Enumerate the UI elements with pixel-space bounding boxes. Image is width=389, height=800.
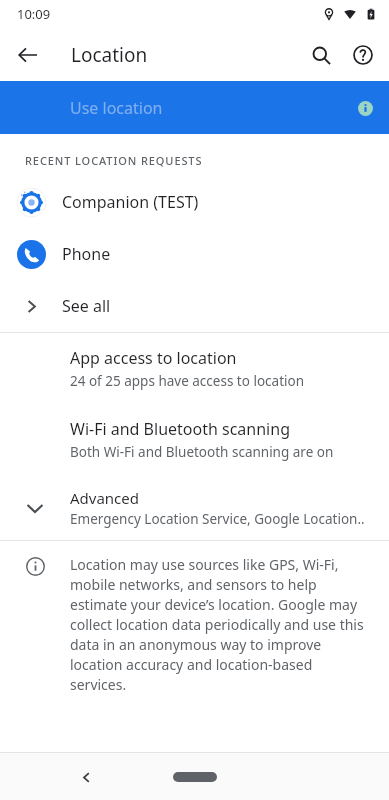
staticText: Location [71, 42, 148, 68]
button[interactable]: App access to location [0, 333, 389, 404]
button[interactable]: Companion (TEST) [0, 176, 389, 228]
button[interactable]: Home [173, 772, 217, 782]
button[interactable]: Advanced [0, 475, 389, 540]
staticText: 10:09 [17, 5, 51, 23]
button[interactable]: Back [9, 36, 47, 74]
button[interactable]: See all [0, 280, 389, 332]
staticText: Wi-Fi and Bluetooth scanning [70, 418, 290, 440]
staticText: Location may use sources like GPS, Wi-Fi… [70, 555, 367, 694]
staticText: RECENT LOCATION REQUESTS [25, 153, 203, 168]
button[interactable]: Use location [0, 81, 389, 134]
staticText: App access to location [70, 347, 237, 369]
staticText: Phone [62, 243, 111, 265]
staticText: See all [62, 295, 111, 317]
button[interactable]: Wi-Fi and Bluetooth scanning [0, 404, 389, 475]
staticText: Both Wi-Fi and Bluetooth scanning are on [70, 443, 334, 461]
button[interactable]: Back [68, 759, 104, 795]
other: Info [354, 97, 376, 119]
staticText: Use location [70, 97, 163, 119]
button[interactable]: Help [342, 34, 384, 76]
staticText: Advanced [70, 488, 140, 508]
staticText: 24 of 25 apps have access to location [70, 372, 304, 390]
button[interactable]: Search [300, 34, 342, 76]
staticText: Emergency Location Service, Google Locat… [70, 510, 365, 528]
button[interactable]: Phone [0, 228, 389, 280]
staticText: Companion (TEST) [62, 191, 199, 213]
